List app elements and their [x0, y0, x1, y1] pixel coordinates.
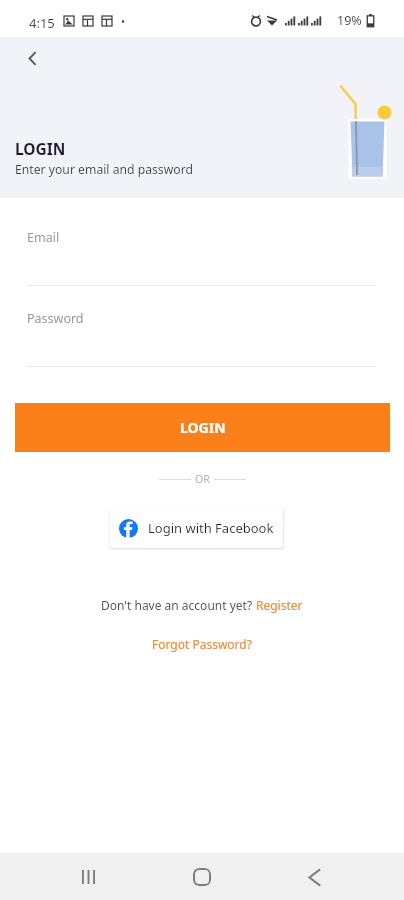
- staticText: LOGIN: [15, 138, 66, 159]
- staticText: Password: [27, 310, 84, 327]
- staticText: Login with Facebook: [148, 519, 274, 537]
- button[interactable]: Password: [27, 305, 376, 367]
- button[interactable]: LOGIN: [15, 403, 390, 452]
- button[interactable]: Forgot Password?: [152, 636, 252, 652]
- button[interactable]: Recent apps: [68, 861, 110, 893]
- button[interactable]: Back: [298, 861, 330, 893]
- button[interactable]: Email: [27, 224, 376, 286]
- staticText: 4:15: [29, 14, 55, 32]
- staticText: Email: [27, 229, 60, 246]
- button[interactable]: Login with Facebook: [110, 508, 283, 548]
- staticText: 19%: [337, 12, 362, 28]
- button[interactable]: Back: [12, 38, 52, 78]
- button[interactable]: Register: [256, 597, 303, 613]
- staticText: Don't have an account yet?: [101, 597, 256, 613]
- staticText: Enter your email and password: [15, 161, 193, 178]
- staticText: LOGIN: [180, 418, 226, 437]
- button[interactable]: Home: [186, 861, 218, 893]
- staticText: OR: [195, 472, 210, 486]
